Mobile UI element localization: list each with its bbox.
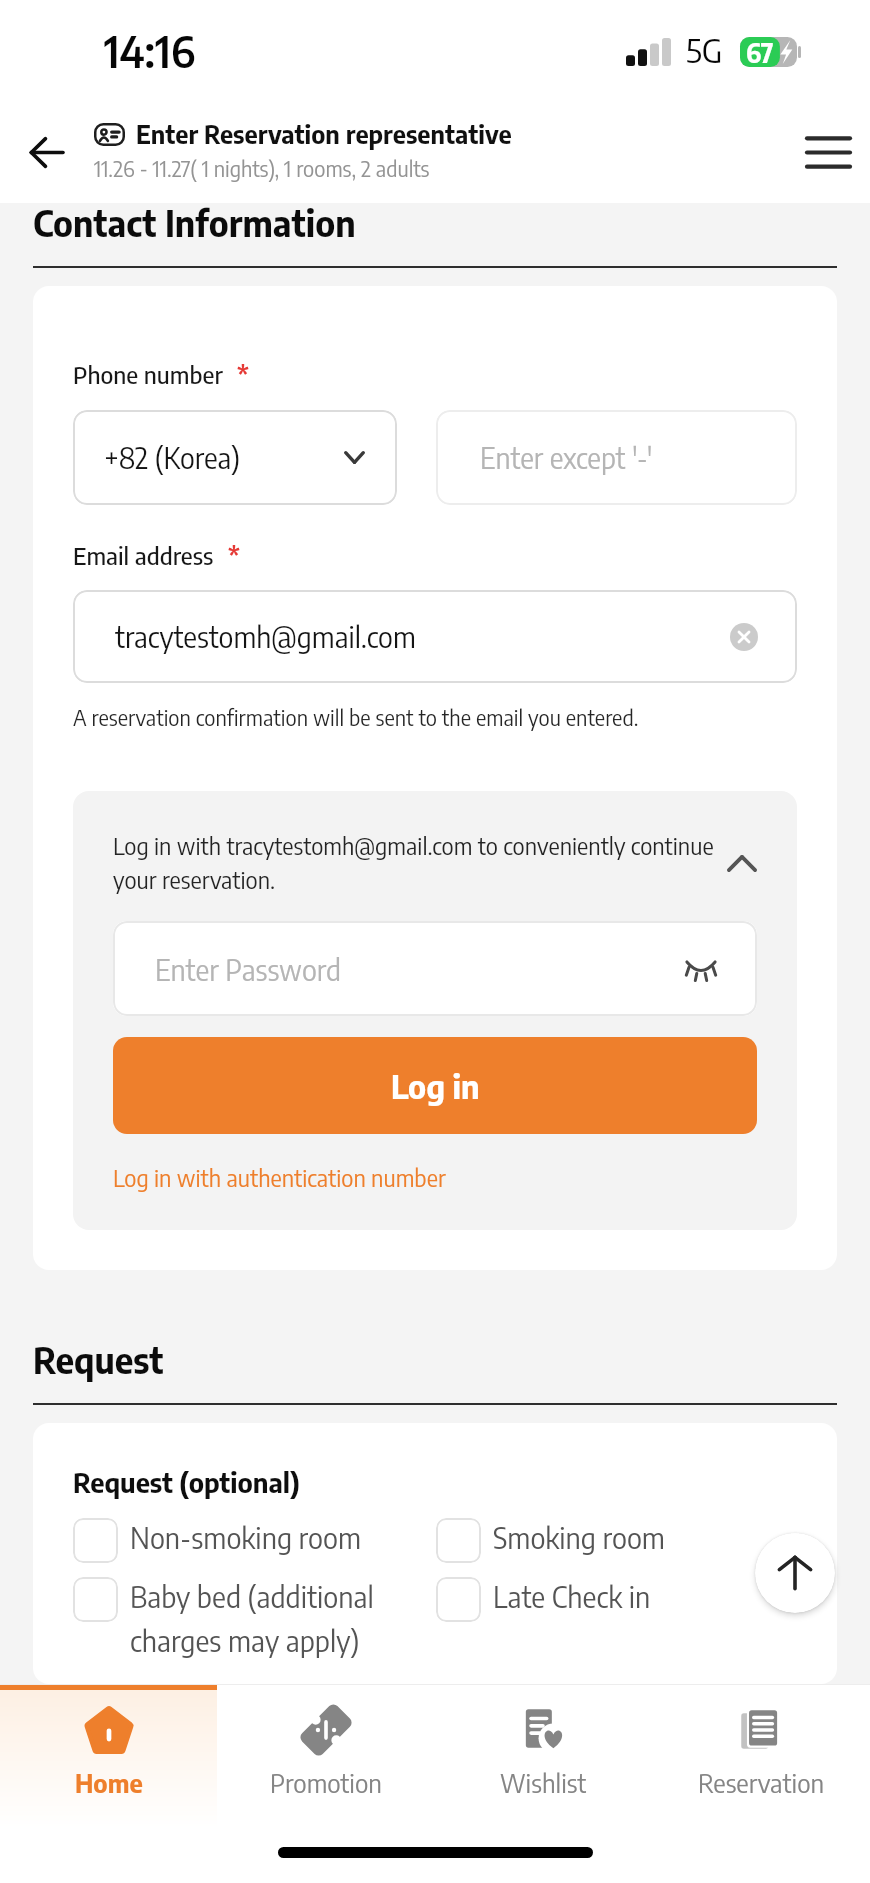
button[interactable]: tracytestomh@gmail.com bbox=[73, 590, 797, 683]
button[interactable]: Back bbox=[14, 120, 78, 184]
staticText: 67 bbox=[746, 36, 774, 66]
staticText: Enter Password bbox=[155, 951, 342, 987]
staticText: +82 (Korea) bbox=[104, 440, 240, 476]
staticText: Enter Reservation representative bbox=[136, 118, 512, 150]
button[interactable]: Menu bbox=[796, 120, 860, 184]
staticText: tracytestomh@gmail.com bbox=[115, 619, 416, 655]
button[interactable]: Home bbox=[0, 1685, 217, 1828]
button[interactable]: Baby bed (additional charges may apply) bbox=[73, 1577, 436, 1658]
staticText: Late Check in bbox=[493, 1578, 651, 1614]
button[interactable]: Clear bbox=[730, 623, 758, 651]
staticText: * bbox=[237, 359, 249, 389]
button[interactable]: Scroll to top bbox=[755, 1533, 835, 1613]
staticText: Promotion bbox=[270, 1766, 382, 1798]
button[interactable]: Wishlist bbox=[434, 1685, 652, 1828]
staticText: Enter except '-' bbox=[480, 440, 653, 476]
staticText: Email address bbox=[73, 540, 214, 570]
button[interactable]: Enter Password bbox=[113, 921, 757, 1016]
button[interactable]: Log in with authentication number bbox=[113, 1163, 446, 1192]
button[interactable]: Collapse bbox=[726, 843, 757, 883]
button[interactable]: Log in bbox=[113, 1037, 757, 1134]
staticText: Contact Information bbox=[33, 200, 356, 245]
staticText: Log in bbox=[391, 1065, 480, 1106]
staticText: 14:16 bbox=[104, 24, 196, 78]
staticText: 5G bbox=[686, 29, 723, 70]
staticText: * bbox=[228, 540, 240, 570]
staticText: Wishlist bbox=[500, 1766, 587, 1798]
staticText: Home bbox=[75, 1766, 143, 1798]
staticText: Reservation bbox=[698, 1766, 825, 1798]
staticText: Smoking room bbox=[493, 1519, 665, 1555]
staticText: A reservation confirmation will be sent … bbox=[73, 704, 639, 731]
button[interactable]: Enter except '-' bbox=[436, 410, 797, 505]
button[interactable]: Reservation bbox=[652, 1685, 870, 1828]
staticText: Request bbox=[33, 1337, 164, 1382]
staticText: Baby bed (additional charges may apply) bbox=[130, 1578, 436, 1659]
button[interactable]: Promotion bbox=[217, 1685, 434, 1828]
staticText: Log in with tracytestomh@gmail.com to co… bbox=[113, 831, 723, 894]
button[interactable]: Show password bbox=[686, 958, 716, 980]
staticText: 11.26 - 11.27( 1 nights), 1 rooms, 2 adu… bbox=[94, 155, 430, 182]
staticText: Phone number bbox=[73, 359, 223, 389]
staticText: Non-smoking room bbox=[130, 1519, 362, 1555]
button[interactable]: Non-smoking room bbox=[73, 1518, 436, 1563]
button[interactable]: Late Check in bbox=[436, 1577, 797, 1622]
staticText: Request (optional) bbox=[73, 1465, 300, 1499]
button[interactable]: +82 (Korea) bbox=[73, 410, 397, 505]
button[interactable]: Smoking room bbox=[436, 1518, 797, 1563]
